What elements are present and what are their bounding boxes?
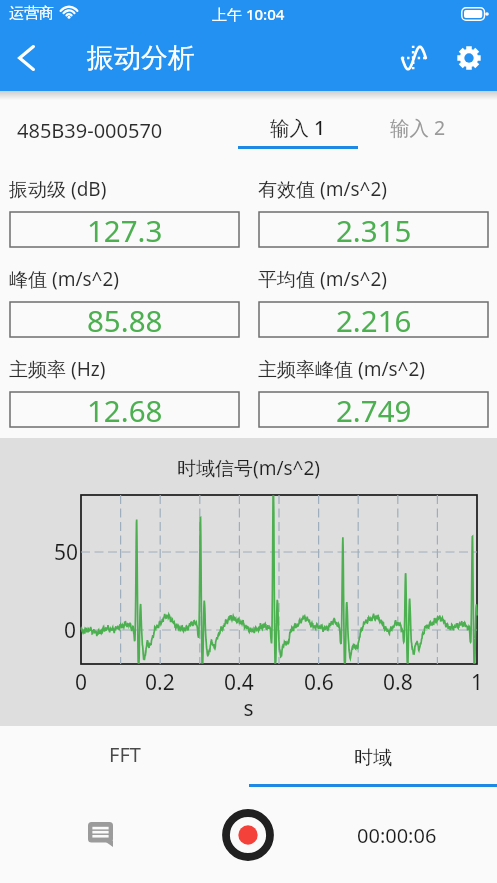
staticText: 输入 1	[270, 114, 326, 141]
staticText: FFT	[109, 741, 141, 768]
staticText: 50	[54, 538, 79, 567]
button[interactable]: 输入 1	[238, 91, 358, 149]
button[interactable]: Settings	[441, 26, 497, 89]
staticText: 峰值 (m/s^2)	[9, 266, 120, 292]
staticText: 85.88	[87, 300, 163, 335]
staticText: 输入 2	[390, 114, 446, 141]
button[interactable]: 时域	[249, 730, 497, 787]
staticText: 2.749	[336, 390, 412, 425]
staticText: 12.68	[87, 390, 163, 425]
staticText: 时域信号(m/s^2)	[0, 455, 497, 481]
staticText: 主频率 (Hz)	[9, 356, 106, 382]
staticText: 0.8	[383, 668, 413, 697]
button[interactable]: FFT	[0, 730, 249, 787]
staticText: 127.3	[87, 210, 163, 245]
staticText: 1	[471, 668, 484, 697]
staticText: 0.2	[145, 668, 175, 697]
staticText: 振动分析	[87, 41, 195, 75]
staticText: 485B39-000570	[17, 117, 163, 144]
staticText: 时域	[354, 746, 392, 770]
button[interactable]: Back	[0, 26, 52, 89]
button[interactable]: Record	[220, 807, 276, 863]
staticText: 有效值 (m/s^2)	[258, 176, 388, 202]
button[interactable]: Waveform	[387, 26, 441, 89]
staticText: 主频率峰值 (m/s^2)	[258, 356, 426, 382]
staticText: 平均值 (m/s^2)	[258, 266, 388, 292]
staticText: 振动级 (dB)	[9, 176, 107, 202]
staticText: 0.6	[304, 668, 334, 697]
button[interactable]: Notes	[76, 810, 124, 858]
staticText: 0	[64, 616, 77, 645]
staticText: 00:00:06	[357, 822, 437, 849]
staticText: 0.4	[224, 668, 254, 697]
staticText: 2.216	[336, 300, 412, 335]
button[interactable]: 输入 2	[358, 91, 478, 149]
staticText: s	[0, 694, 497, 723]
staticText: 2.315	[336, 210, 412, 245]
staticText: 上午 10:04	[212, 4, 285, 24]
staticText: 0	[75, 668, 88, 697]
staticText: 运营商	[9, 4, 54, 23]
